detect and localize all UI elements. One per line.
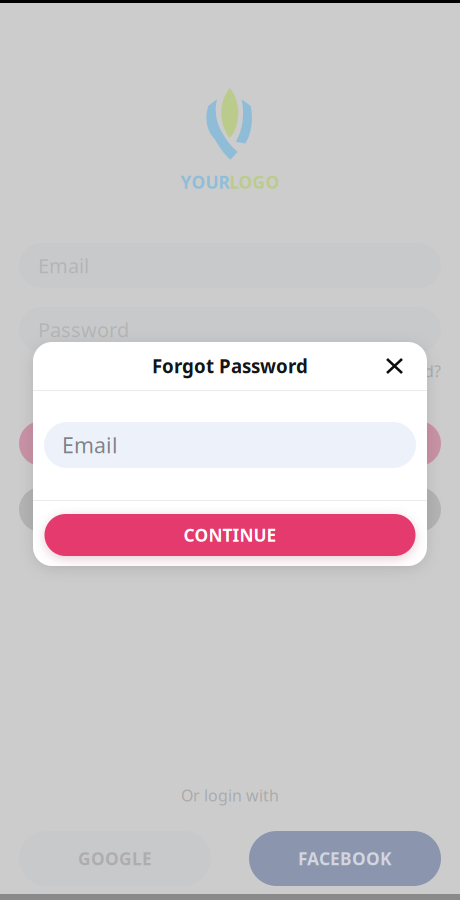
button[interactable]: LOGIN <box>19 421 441 466</box>
button[interactable]: SIGN UP <box>19 487 441 532</box>
button[interactable]: Email <box>44 422 416 468</box>
staticText: Forgot Password <box>152 354 308 378</box>
staticText: Forgot Password? <box>306 360 441 382</box>
staticText: LOGO <box>229 170 279 193</box>
staticText: Email <box>62 431 118 459</box>
button[interactable]: Close <box>373 345 427 387</box>
staticText: Email <box>38 252 89 279</box>
button[interactable]: FACEBOOK <box>249 831 441 886</box>
button[interactable]: Password <box>19 307 441 352</box>
button[interactable]: GOOGLE <box>19 831 211 886</box>
staticText: Password <box>38 316 129 343</box>
staticText: SIGN UP <box>186 495 273 524</box>
staticText: GOOGLE <box>78 847 152 870</box>
button[interactable]: Forgot Password? <box>19 358 441 384</box>
staticText: FACEBOOK <box>298 847 392 870</box>
staticText: CONTINUE <box>183 523 276 546</box>
staticText: Or login with <box>181 785 279 806</box>
button[interactable]: CONTINUE <box>44 514 415 556</box>
staticText: YOUR <box>180 170 229 193</box>
